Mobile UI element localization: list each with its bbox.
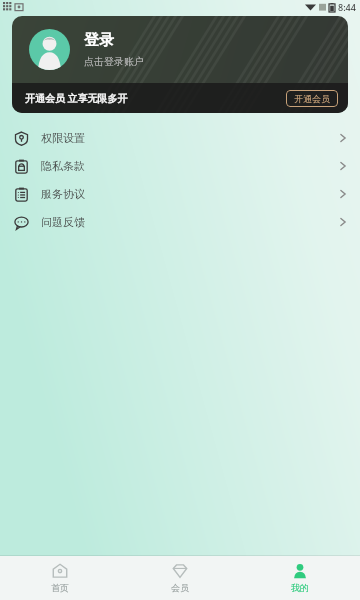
staticText: 8:44 bbox=[338, 1, 356, 13]
staticText: 点击登录账户 bbox=[84, 55, 144, 68]
button[interactable]: 问题反馈 bbox=[0, 208, 360, 236]
button[interactable]: 登录 bbox=[12, 16, 348, 83]
staticText: 会员 bbox=[171, 582, 189, 593]
button[interactable]: 权限设置 bbox=[0, 124, 360, 152]
button[interactable]: 首页 bbox=[0, 556, 120, 600]
button[interactable]: 我的 bbox=[240, 556, 360, 600]
staticText: 权限设置 bbox=[41, 131, 85, 145]
staticText: 首页 bbox=[51, 582, 69, 593]
button[interactable]: 会员 bbox=[120, 556, 240, 600]
staticText: 我的 bbox=[291, 582, 309, 593]
staticText: 服务协议 bbox=[41, 187, 85, 201]
button[interactable]: 隐私条款 bbox=[0, 152, 360, 180]
staticText: 登录 bbox=[84, 31, 114, 50]
button[interactable]: 开通会员 bbox=[286, 90, 338, 107]
staticText: 问题反馈 bbox=[41, 215, 85, 229]
button[interactable]: 服务协议 bbox=[0, 180, 360, 208]
staticText: 开通会员 bbox=[294, 93, 330, 104]
staticText: 隐私条款 bbox=[41, 159, 85, 173]
staticText: 开通会员 立享无限多开 bbox=[25, 91, 128, 105]
button[interactable]: 开通会员 立享无限多开 bbox=[12, 83, 348, 113]
